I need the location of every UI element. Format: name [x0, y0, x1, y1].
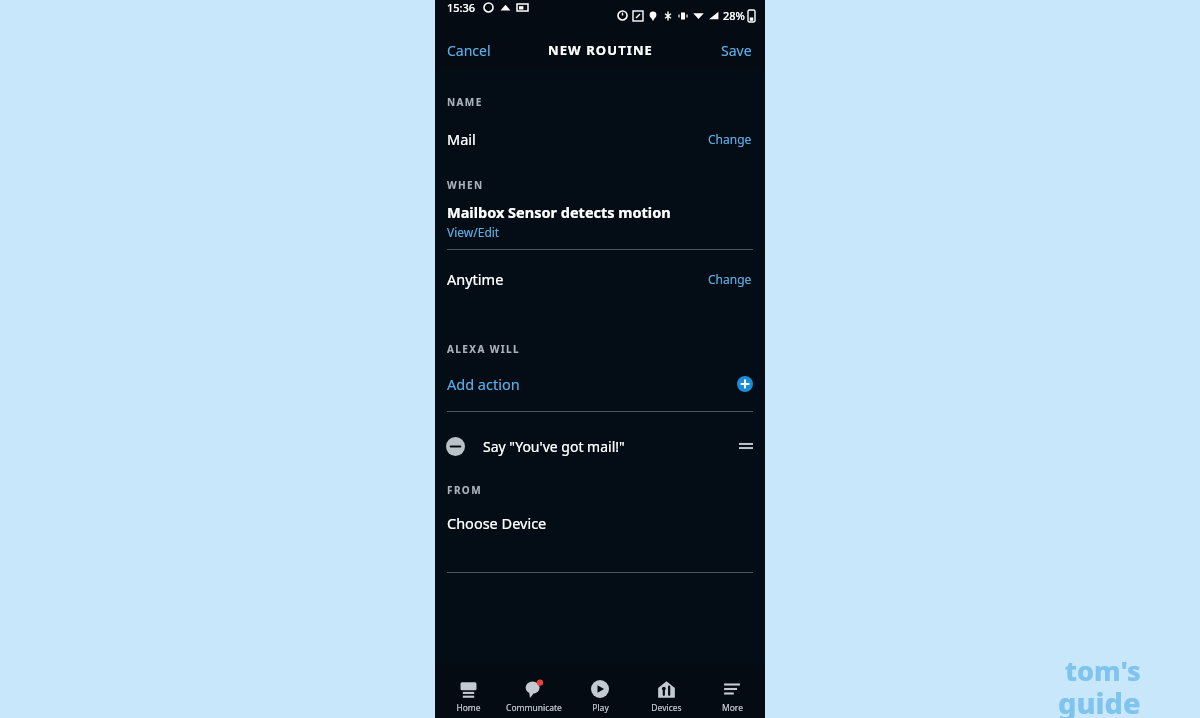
staticText: Home [456, 702, 481, 714]
other: Reorder [739, 440, 753, 452]
button[interactable]: Play [567, 670, 633, 714]
staticText: Cancel [447, 41, 491, 60]
staticText: Change [708, 271, 752, 287]
button[interactable]: Cancel [435, 35, 503, 66]
staticText: FROM [447, 483, 482, 497]
button[interactable]: Remove action [435, 428, 765, 464]
other: Add action [737, 376, 753, 392]
staticText: 28% [723, 8, 745, 23]
staticText: More [722, 702, 743, 714]
other: Remove action [446, 437, 465, 456]
staticText: guide [1058, 683, 1141, 718]
staticText: Say "You've got mail!" [483, 437, 625, 456]
staticText: Anytime [447, 269, 504, 289]
button[interactable]: Add action [435, 365, 765, 403]
button[interactable]: Communicate [501, 670, 567, 714]
button[interactable]: Anytime [435, 262, 765, 296]
staticText: Mail [447, 129, 476, 149]
staticText: NEW ROUTINE [548, 41, 653, 59]
staticText: NAME [447, 95, 483, 109]
button[interactable]: More [699, 670, 765, 714]
button[interactable]: Choose Device [435, 507, 765, 539]
staticText: tom's [1065, 652, 1141, 689]
staticText: ALEXA WILL [447, 342, 521, 356]
staticText: Change [708, 131, 752, 147]
staticText: WHEN [447, 178, 484, 192]
staticText: Communicate [506, 702, 562, 714]
staticText: Choose Device [447, 513, 547, 533]
staticText: Save [721, 41, 752, 60]
staticText: Mailbox Sensor detects motion [447, 202, 671, 222]
staticText: Play [592, 702, 609, 714]
button[interactable]: Home [435, 670, 501, 714]
button[interactable]: Devices [633, 670, 699, 714]
button[interactable]: Save [708, 35, 765, 66]
button[interactable]: View/Edit [447, 224, 500, 240]
staticText: Devices [651, 702, 682, 714]
staticText: View/Edit [447, 224, 500, 240]
staticText: 15:36 [447, 0, 476, 15]
staticText: Add action [447, 374, 520, 394]
button[interactable]: Mail [435, 122, 765, 156]
